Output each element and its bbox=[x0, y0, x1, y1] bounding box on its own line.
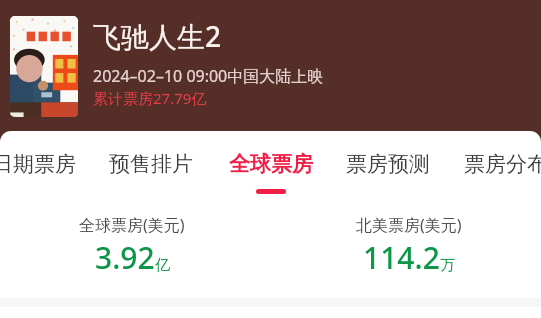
button[interactable]: Movie poster bbox=[10, 16, 78, 117]
staticText: 万 bbox=[440, 256, 455, 275]
button[interactable]: 预售排片 bbox=[92, 131, 210, 195]
button[interactable]: 票房预测 bbox=[329, 131, 447, 195]
staticText: 114.2 bbox=[363, 237, 440, 278]
button[interactable]: 票房分布 bbox=[447, 131, 541, 195]
staticText: 亿 bbox=[155, 256, 170, 275]
staticText: 票房预测 bbox=[346, 151, 430, 177]
staticText: 北美票房(美元) bbox=[356, 214, 462, 236]
staticText: 票房分布 bbox=[464, 151, 541, 177]
staticText: 2024–02–10 09:00中国大陆上映 bbox=[93, 65, 324, 87]
staticText: 累计票房27.79亿 bbox=[93, 88, 207, 108]
staticText: 全球票房(美元) bbox=[79, 214, 185, 236]
staticText: 全球票房 bbox=[229, 151, 313, 177]
button[interactable]: 全球票房 bbox=[212, 131, 330, 195]
button[interactable]: 全球票房(美元) bbox=[62, 214, 202, 278]
staticText: 3.92 bbox=[95, 237, 155, 278]
button[interactable]: 日期票房 bbox=[0, 131, 93, 195]
staticText: 飞驰人生2 bbox=[93, 17, 222, 55]
staticText: 预售排片 bbox=[109, 151, 193, 177]
button[interactable]: 北美票房(美元) bbox=[339, 214, 479, 278]
staticText: 日期票房 bbox=[0, 151, 76, 177]
